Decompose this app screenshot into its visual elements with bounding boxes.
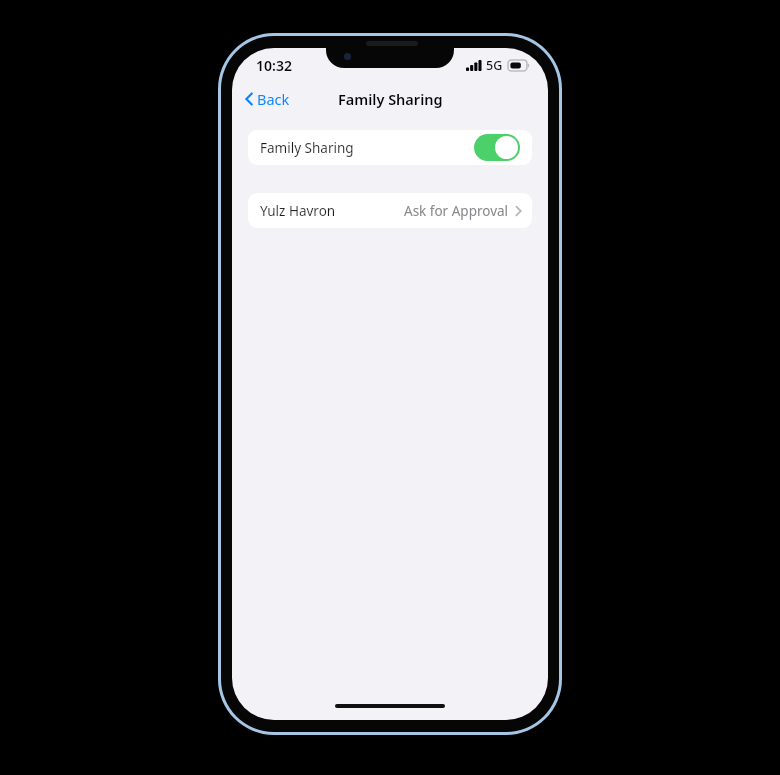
staticText: Yulz Havron [260, 202, 336, 220]
staticText: Ask for Approval [404, 202, 509, 220]
staticText: Family Sharing [338, 89, 443, 109]
button[interactable]: Back [232, 84, 298, 114]
staticText: 5G [486, 57, 503, 74]
button[interactable]: Yulz Havron [248, 193, 532, 228]
staticText: Back [257, 89, 290, 109]
button[interactable]: Family Sharing [248, 130, 532, 165]
button[interactable]: Family Sharing toggle, on [474, 134, 520, 161]
staticText: 10:32 [256, 56, 292, 75]
staticText: Family Sharing [260, 139, 354, 157]
